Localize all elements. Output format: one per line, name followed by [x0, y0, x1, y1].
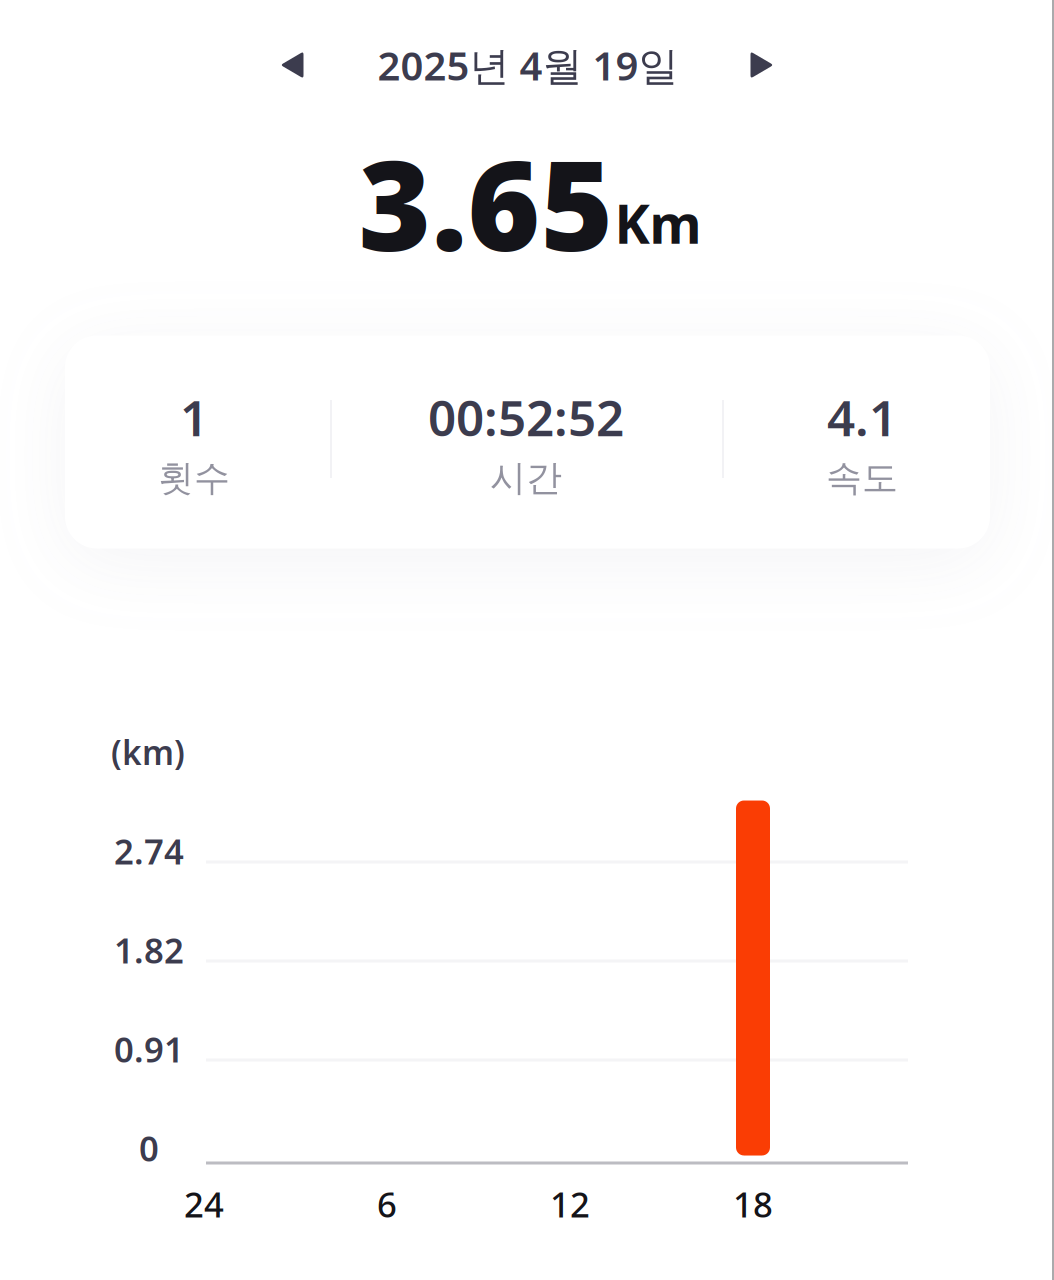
staticText: 00:52:52 — [428, 384, 624, 450]
staticText: 1 — [180, 384, 208, 450]
staticText: 18 — [733, 1181, 773, 1227]
staticText: (km) — [111, 730, 185, 774]
staticText: 0.91 — [114, 1026, 184, 1072]
staticText: 시간 — [490, 456, 562, 500]
staticText: 24 — [184, 1181, 224, 1227]
staticText: 3.65 — [358, 121, 613, 285]
staticText: 횟수 — [158, 456, 230, 500]
button[interactable]: Previous day — [259, 32, 325, 98]
staticText: 6 — [377, 1181, 397, 1227]
staticText: Km — [614, 188, 701, 258]
staticText: 12 — [550, 1181, 590, 1227]
staticText: 4.1 — [827, 384, 897, 450]
staticText: 1.82 — [114, 927, 184, 973]
staticText: 0 — [139, 1125, 159, 1171]
staticText: 2025년 4월 19일 — [377, 38, 678, 91]
button[interactable]: Next day — [729, 32, 795, 98]
staticText: 속도 — [826, 456, 898, 500]
staticText: 2.74 — [114, 828, 184, 874]
